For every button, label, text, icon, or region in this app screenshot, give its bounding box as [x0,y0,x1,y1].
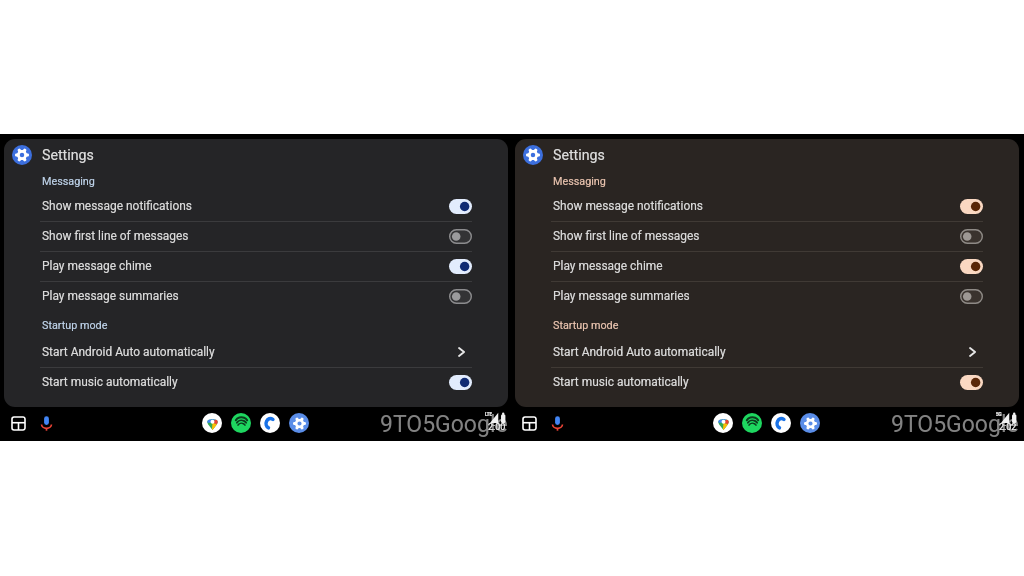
staticText: Show message notifications [42,199,192,213]
button[interactable] [960,199,983,214]
staticText: Show first line of messages [42,229,189,243]
button[interactable]: Phone [260,413,280,433]
button[interactable] [960,259,983,274]
button[interactable] [960,375,983,390]
button[interactable]: Start Android Auto automatically [515,338,1019,368]
staticText: Messaging [553,175,606,188]
staticText: Startup mode [553,319,619,332]
button[interactable]: Spotify [742,413,762,433]
staticText: Settings [553,147,605,164]
button[interactable]: Phone [771,413,791,433]
button[interactable]: Play message chime [4,252,508,282]
button[interactable] [960,289,983,304]
button[interactable]: Show first line of messages [515,222,1019,252]
button[interactable]: Assistant [546,412,568,434]
staticText: Start music automatically [553,375,689,389]
button[interactable]: Maps [713,413,733,433]
staticText: Play message chime [42,259,152,273]
staticText: 5G [996,412,1002,417]
button[interactable]: Apps [7,412,29,434]
staticText: Play message chime [553,259,663,273]
button[interactable] [449,289,472,304]
staticText: Play message summaries [42,289,179,303]
button[interactable]: Apps [518,412,540,434]
button[interactable] [449,259,472,274]
staticText: Show first line of messages [553,229,700,243]
staticText: LTE [485,412,493,417]
staticText: 2:00 [488,422,506,433]
staticText: Messaging [42,175,95,188]
button[interactable]: Start Android Auto automatically [4,338,508,368]
button[interactable]: Play message summaries [515,282,1019,312]
button[interactable] [449,199,472,214]
button[interactable]: Play message summaries [4,282,508,312]
button[interactable]: Settings [289,413,309,433]
button[interactable]: Play message chime [515,252,1019,282]
button[interactable]: Show first line of messages [4,222,508,252]
staticText: Settings [42,147,94,164]
button[interactable]: Start music automatically [515,368,1019,398]
staticText: 9TO5Google [380,411,508,438]
staticText: Show message notifications [553,199,703,213]
button[interactable]: Maps [202,413,222,433]
staticText: Play message summaries [553,289,690,303]
button[interactable]: Settings [800,413,820,433]
button[interactable]: Assistant [35,412,57,434]
button[interactable]: Start music automatically [4,368,508,398]
staticText: Start Android Auto automatically [42,345,215,359]
button[interactable]: Show message notifications [515,192,1019,222]
staticText: Start music automatically [42,375,178,389]
button[interactable] [960,229,983,244]
button[interactable]: Show message notifications [4,192,508,222]
button[interactable] [449,229,472,244]
staticText: Startup mode [42,319,108,332]
staticText: 9TO5Google [891,411,1019,438]
staticText: 2:02 [999,422,1017,433]
button[interactable]: Spotify [231,413,251,433]
button[interactable] [449,375,472,390]
staticText: Start Android Auto automatically [553,345,726,359]
